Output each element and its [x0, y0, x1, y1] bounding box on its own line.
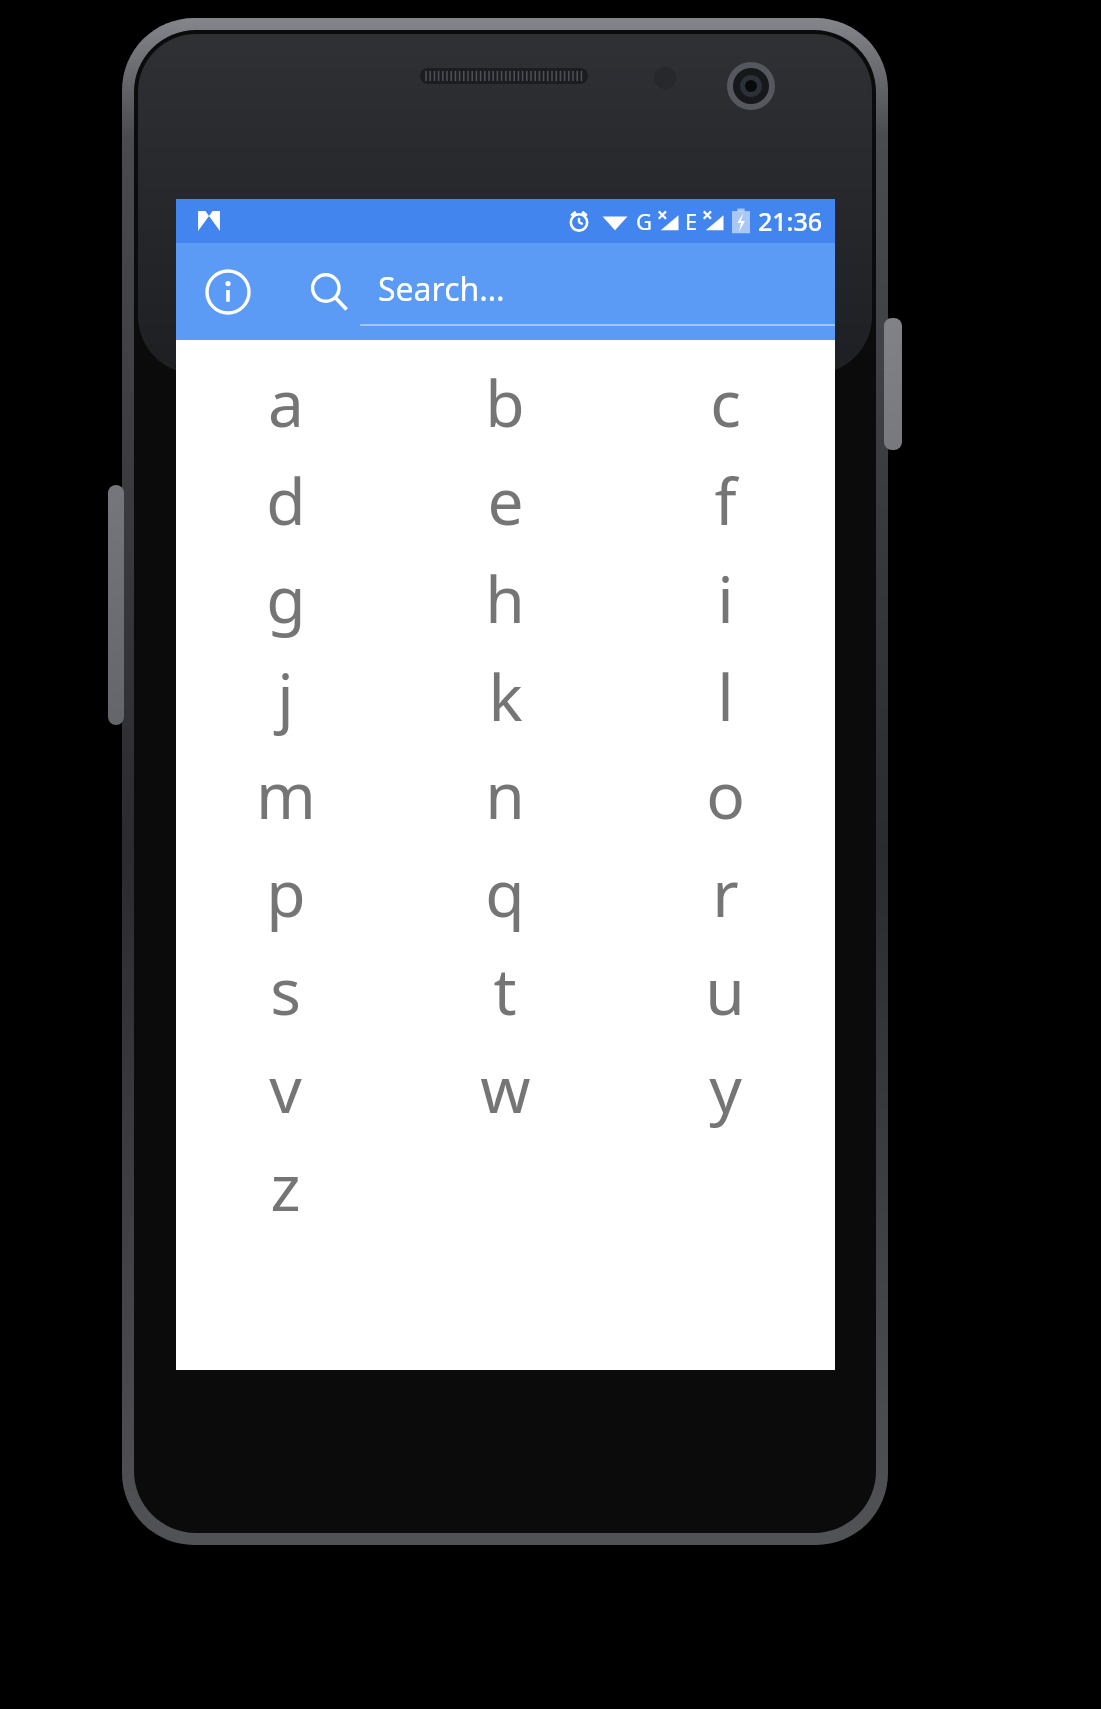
- staticText: z: [270, 1143, 301, 1230]
- button[interactable]: k: [395, 647, 615, 745]
- staticText: n: [485, 751, 525, 838]
- button[interactable]: w: [395, 1039, 615, 1137]
- staticText: e: [487, 457, 524, 544]
- button[interactable]: a: [176, 353, 395, 451]
- staticText: o: [706, 751, 745, 838]
- staticText: l: [717, 653, 734, 740]
- staticText: a: [268, 359, 304, 446]
- button[interactable]: z: [176, 1137, 395, 1235]
- staticText: r: [712, 849, 739, 936]
- staticText: j: [277, 653, 294, 740]
- staticText: w: [480, 1045, 531, 1132]
- button[interactable]: h: [395, 549, 615, 647]
- button[interactable]: e: [395, 451, 615, 549]
- button[interactable]: Search…: [356, 243, 835, 340]
- button[interactable]: j: [176, 647, 395, 745]
- staticText: p: [266, 849, 306, 936]
- staticText: b: [485, 359, 525, 446]
- button[interactable]: Search: [302, 265, 356, 319]
- button[interactable]: q: [395, 843, 615, 941]
- staticText: f: [714, 457, 737, 544]
- staticText: i: [717, 555, 734, 642]
- staticText: s: [270, 947, 301, 1034]
- button[interactable]: y: [615, 1039, 835, 1137]
- button[interactable]: g: [176, 549, 395, 647]
- staticText: y: [709, 1045, 742, 1132]
- staticText: t: [493, 947, 517, 1034]
- staticText: d: [266, 457, 306, 544]
- button[interactable]: n: [395, 745, 615, 843]
- button[interactable]: p: [176, 843, 395, 941]
- staticText: m: [256, 751, 316, 838]
- button[interactable]: m: [176, 745, 395, 843]
- button[interactable]: u: [615, 941, 835, 1039]
- button[interactable]: s: [176, 941, 395, 1039]
- staticText: 21:36: [758, 204, 823, 238]
- button[interactable]: i: [615, 549, 835, 647]
- button[interactable]: Info: [198, 262, 258, 322]
- staticText: G: [636, 206, 653, 236]
- staticText: q: [485, 849, 525, 936]
- button[interactable]: c: [615, 353, 835, 451]
- staticText: E: [685, 206, 698, 236]
- button[interactable]: t: [395, 941, 615, 1039]
- button[interactable]: v: [176, 1039, 395, 1137]
- button[interactable]: l: [615, 647, 835, 745]
- staticText: v: [269, 1045, 302, 1132]
- staticText: u: [705, 947, 745, 1034]
- staticText: k: [488, 653, 523, 740]
- button[interactable]: d: [176, 451, 395, 549]
- button[interactable]: f: [615, 451, 835, 549]
- staticText: c: [710, 359, 741, 446]
- button[interactable]: b: [395, 353, 615, 451]
- staticText: Search…: [378, 267, 505, 311]
- staticText: g: [266, 555, 306, 642]
- staticText: h: [485, 555, 525, 642]
- button[interactable]: o: [615, 745, 835, 843]
- button[interactable]: r: [615, 843, 835, 941]
